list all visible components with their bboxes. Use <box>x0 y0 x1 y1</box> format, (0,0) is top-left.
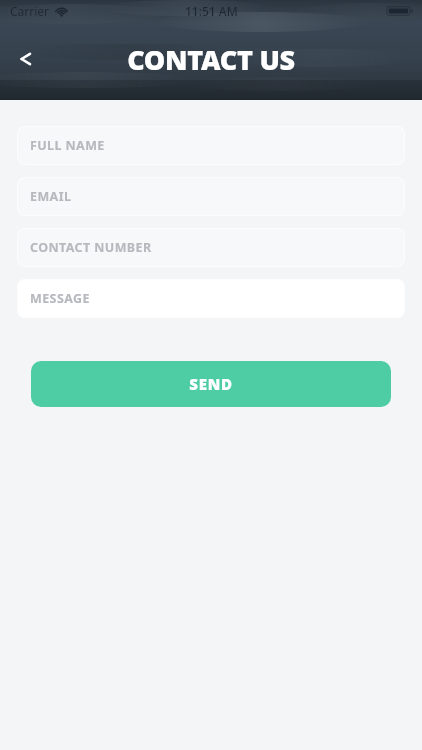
button[interactable]: MESSAGE <box>17 279 405 318</box>
button[interactable]: EMAIL <box>17 177 405 216</box>
staticText: FULL NAME <box>30 137 105 154</box>
staticText: CONTACT US <box>127 41 295 78</box>
staticText: 11:51 AM <box>185 3 238 19</box>
button[interactable]: FULL NAME <box>17 126 405 165</box>
button[interactable]: Back <box>0 33 52 85</box>
staticText: Carrier <box>10 3 50 19</box>
staticText: CONTACT NUMBER <box>30 239 152 256</box>
button[interactable]: SEND <box>31 361 391 407</box>
staticText: SEND <box>189 374 233 394</box>
staticText: EMAIL <box>30 188 72 205</box>
staticText: MESSAGE <box>30 290 90 307</box>
button[interactable]: CONTACT NUMBER <box>17 228 405 267</box>
